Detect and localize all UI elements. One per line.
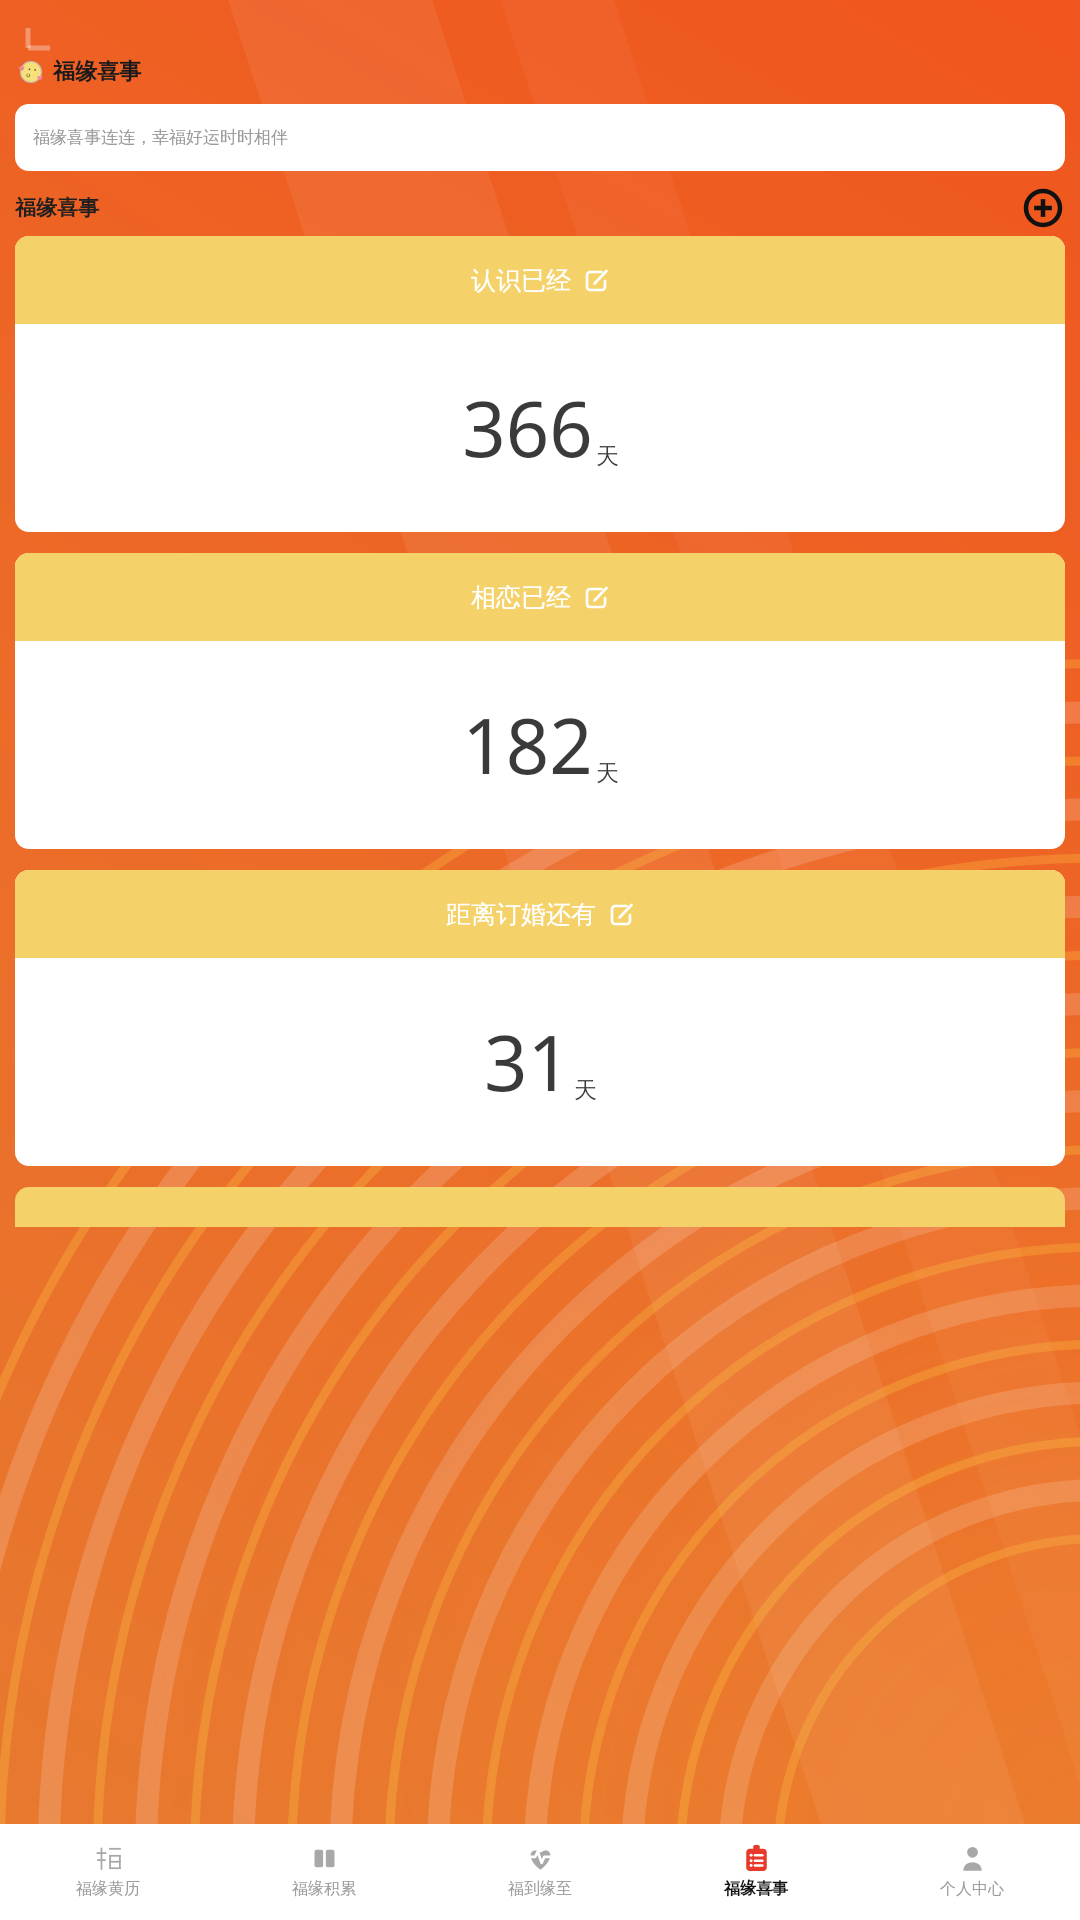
staticText: 福缘黄历 — [76, 1879, 140, 1899]
staticText: 31 — [484, 1010, 571, 1114]
button[interactable] — [15, 1187, 1065, 1227]
staticText: 182 — [462, 693, 593, 797]
staticText: 福缘喜事 — [53, 58, 141, 86]
button[interactable]: 福缘积累 — [216, 1824, 432, 1920]
other: Edit — [584, 585, 609, 610]
staticText: 天 — [596, 759, 619, 788]
button[interactable]: 福缘黄历 — [0, 1824, 216, 1920]
button[interactable]: 认识已经 — [15, 236, 1065, 532]
staticText: 距离订婚还有 — [446, 899, 596, 930]
staticText: 认识已经 — [471, 265, 571, 296]
staticText: 天 — [574, 1076, 597, 1105]
button[interactable]: Add — [1021, 186, 1065, 230]
staticText: 天 — [596, 442, 619, 471]
staticText: 福缘积累 — [292, 1879, 356, 1899]
staticText: 福到缘至 — [508, 1879, 572, 1899]
staticText: 366 — [462, 376, 593, 480]
button[interactable]: 相恋已经 — [15, 553, 1065, 849]
staticText: 福缘喜事 — [15, 195, 99, 221]
button[interactable]: 福缘喜事 — [648, 1824, 864, 1920]
staticText: 相恋已经 — [471, 582, 571, 613]
staticText: 福缘喜事连连，幸福好运时时相伴 — [33, 127, 288, 148]
button[interactable]: 福缘喜事连连，幸福好运时时相伴 — [15, 104, 1065, 171]
button[interactable]: 福缘喜事 — [14, 52, 145, 92]
staticText: 福缘喜事 — [724, 1879, 788, 1899]
other: Edit — [584, 268, 609, 293]
button[interactable]: 个人中心 — [864, 1824, 1080, 1920]
button[interactable]: 距离订婚还有 — [15, 870, 1065, 1166]
other: Edit — [609, 902, 634, 927]
staticText: 个人中心 — [940, 1879, 1004, 1899]
button[interactable]: 福到缘至 — [432, 1824, 648, 1920]
